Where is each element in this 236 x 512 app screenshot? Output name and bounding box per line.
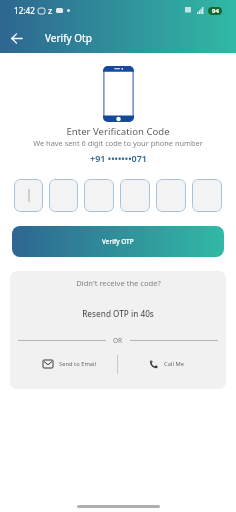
button[interactable] bbox=[14, 179, 43, 212]
staticText: 94 bbox=[212, 7, 219, 15]
staticText: Send to Email bbox=[59, 360, 97, 368]
staticText: We have sent 6 digit code to your phone … bbox=[33, 138, 203, 148]
staticText: Enter Verification Code bbox=[66, 125, 170, 138]
staticText: OR bbox=[113, 336, 123, 345]
staticText: Call Me bbox=[164, 360, 184, 368]
button[interactable]: Back bbox=[0, 23, 33, 53]
button[interactable] bbox=[49, 179, 78, 212]
button[interactable]: Send to Email bbox=[10, 353, 117, 375]
button[interactable] bbox=[156, 179, 186, 212]
button[interactable]: Verify OTP bbox=[12, 226, 224, 257]
staticText: Resend OTP in 40s bbox=[82, 308, 154, 318]
staticText: Didn't receive the code? bbox=[76, 278, 161, 288]
staticText: Verify OTP bbox=[102, 237, 134, 246]
staticText: 12:42 bbox=[14, 5, 35, 16]
staticText: +91 •••••••071 bbox=[90, 152, 147, 164]
staticText: Z bbox=[48, 6, 53, 16]
button[interactable] bbox=[192, 179, 222, 212]
button[interactable] bbox=[120, 179, 150, 212]
button[interactable] bbox=[84, 179, 114, 212]
staticText: Verify Otp bbox=[45, 31, 92, 45]
button[interactable]: Call Me bbox=[118, 353, 226, 375]
